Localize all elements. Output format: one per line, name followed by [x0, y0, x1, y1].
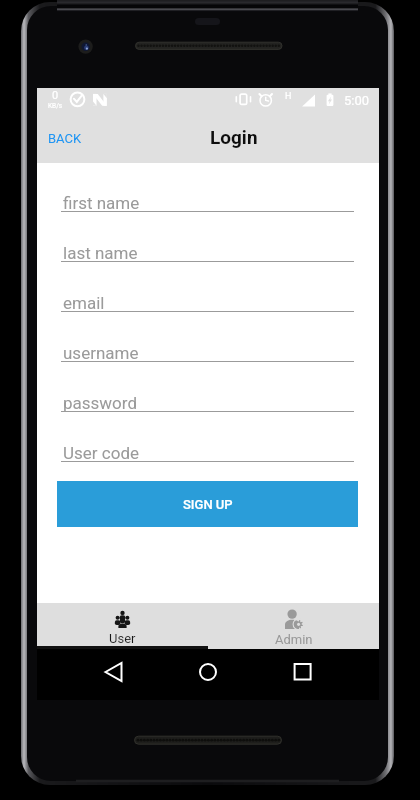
staticText: KB/s [48, 102, 63, 110]
button[interactable]: User code [61, 439, 354, 462]
button[interactable]: email [61, 289, 354, 312]
button[interactable]: first name [61, 189, 354, 212]
staticText: User [109, 631, 136, 646]
staticText: first name [63, 193, 140, 213]
button[interactable]: Back [95, 649, 131, 700]
button[interactable]: BACK [37, 113, 96, 163]
staticText: BACK [48, 131, 82, 146]
button[interactable]: last name [61, 239, 354, 262]
staticText: User code [63, 443, 139, 463]
staticText: 0 [52, 89, 59, 102]
staticText: last name [63, 243, 138, 263]
staticText: Admin [275, 632, 313, 647]
staticText: email [63, 293, 105, 313]
button[interactable]: User [37, 603, 208, 649]
staticText: 5:00 [344, 93, 370, 108]
button[interactable]: username [61, 339, 354, 362]
button[interactable]: password [61, 389, 354, 412]
staticText: password [63, 393, 138, 413]
button[interactable]: Home [190, 649, 226, 700]
staticText: Login [210, 126, 258, 148]
staticText: username [63, 343, 139, 363]
button[interactable]: Admin [208, 603, 379, 649]
staticText: SIGN UP [183, 497, 233, 512]
button[interactable]: SIGN UP [57, 481, 358, 527]
button[interactable]: Recent apps [284, 649, 320, 700]
staticText: H [285, 91, 292, 102]
